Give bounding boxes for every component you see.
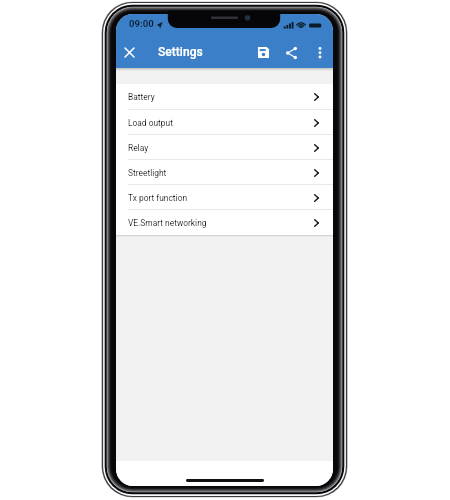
button[interactable]: Relay: [116, 135, 333, 160]
staticText: Load output: [128, 118, 173, 128]
button[interactable]: Load output: [116, 110, 333, 135]
button[interactable]: VE.Smart networking: [116, 210, 333, 235]
button[interactable]: Battery: [116, 84, 333, 110]
button[interactable]: Share: [280, 41, 303, 64]
button[interactable]: Close: [118, 41, 141, 64]
staticText: Relay: [128, 143, 149, 153]
staticText: Tx port function: [128, 193, 188, 203]
button[interactable]: Save: [252, 41, 275, 64]
button[interactable]: Streetlight: [116, 160, 333, 185]
staticText: Settings: [158, 45, 203, 59]
staticText: Streetlight: [128, 168, 167, 178]
button[interactable]: Tx port function: [116, 185, 333, 210]
staticText: 09:00: [129, 18, 154, 29]
staticText: Battery: [128, 92, 155, 102]
button[interactable]: More options: [308, 41, 331, 64]
staticText: VE.Smart networking: [128, 218, 207, 228]
